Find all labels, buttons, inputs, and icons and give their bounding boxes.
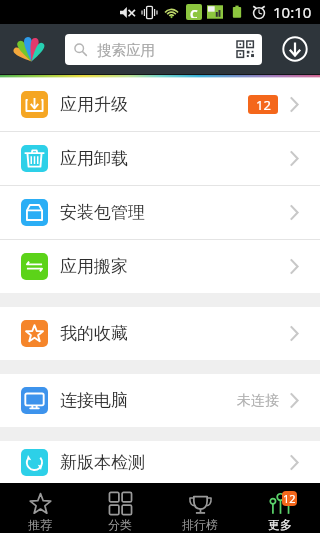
staticText: 12 — [256, 96, 271, 114]
button[interactable]: 排行榜 — [160, 483, 240, 533]
staticText: 推荐 — [28, 517, 52, 532]
button[interactable]: 应用卸载 — [0, 132, 320, 185]
staticText: 12 — [283, 491, 296, 506]
button[interactable]: 连接电脑 — [0, 374, 320, 427]
button[interactable]: 应用搬家 — [0, 240, 320, 293]
staticText: 排行榜 — [182, 517, 218, 532]
button[interactable]: Logo — [0, 24, 65, 74]
button[interactable]: Scan QR code — [237, 41, 255, 59]
button[interactable]: 12 — [240, 483, 320, 533]
button[interactable]: Downloads — [262, 24, 320, 74]
button[interactable]: 安装包管理 — [0, 186, 320, 239]
staticText: 分类 — [108, 517, 132, 532]
staticText: 安装包管理 — [60, 202, 145, 223]
staticText: 应用卸载 — [60, 148, 128, 169]
staticText: 我的收藏 — [60, 323, 128, 344]
staticText: 更多 — [268, 517, 292, 532]
staticText: 搜索应用 — [97, 41, 155, 59]
staticText: C — [190, 6, 198, 18]
button[interactable]: 我的收藏 — [0, 307, 320, 360]
button[interactable]: 搜索应用 — [65, 34, 262, 65]
staticText: 应用搬家 — [60, 256, 128, 277]
button[interactable]: 新版本检测 — [0, 441, 320, 483]
button[interactable]: 分类 — [80, 483, 160, 533]
staticText: 应用升级 — [60, 94, 128, 115]
button[interactable]: 应用升级 — [0, 78, 320, 131]
staticText: 新版本检测 — [60, 452, 145, 473]
staticText: 连接电脑 — [60, 390, 128, 411]
staticText: 10:10 — [273, 2, 312, 22]
staticText: 未连接 — [237, 392, 279, 410]
button[interactable]: 推荐 — [0, 483, 80, 533]
